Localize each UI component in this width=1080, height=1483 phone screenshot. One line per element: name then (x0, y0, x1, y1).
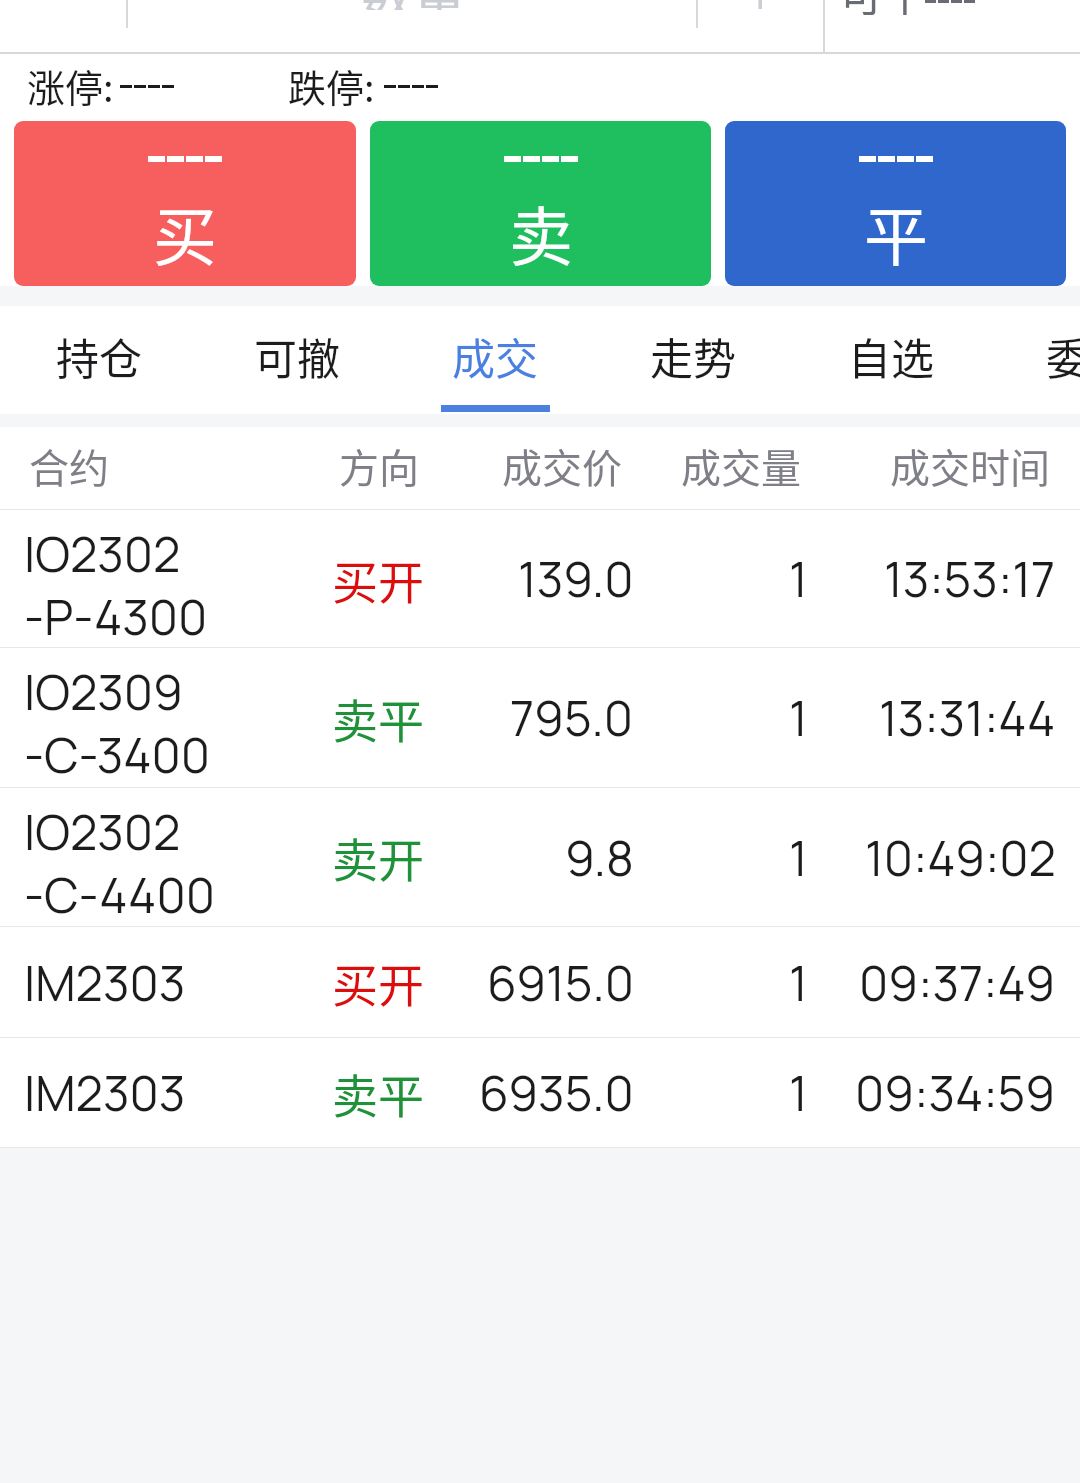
staticText: 成交价 (502, 437, 622, 495)
staticText: 卖开 (332, 824, 424, 891)
staticText: 1 (789, 950, 808, 1016)
button[interactable]: IO2302 -P-4300 (0, 510, 1080, 648)
staticText: 成交时间 (890, 437, 1050, 495)
staticText: 1 (789, 825, 808, 891)
staticText: 卖平 (332, 1060, 424, 1127)
staticText: 委托 (1046, 325, 1080, 387)
staticText: 卖平 (332, 685, 424, 752)
button[interactable]: IO2309 -C-3400 (0, 648, 1080, 788)
staticText: 可平 (839, 0, 927, 15)
staticText: 成交量 (681, 437, 801, 495)
staticText: 1 (750, 0, 768, 16)
staticText: IO2302 -P-4300 (24, 521, 208, 650)
staticText: IO2302 -C-4400 (24, 799, 215, 928)
staticText: 跌停: (288, 58, 375, 113)
staticText: 涨停: (27, 58, 114, 113)
staticText: 方向 (339, 437, 419, 495)
staticText: 795.0 (510, 685, 634, 751)
staticText: 10:49:02 (865, 825, 1056, 891)
staticText: 09:34:59 (855, 1060, 1056, 1126)
staticText: 09:37:49 (859, 950, 1056, 1016)
staticText: 走势 (650, 325, 736, 387)
staticText: 买开 (332, 949, 424, 1016)
button[interactable]: 持仓 (0, 306, 198, 413)
staticText: 成交 (452, 325, 538, 387)
staticText: 9.8 (565, 825, 634, 891)
staticText: 139.0 (518, 546, 634, 612)
staticText: 1 (789, 685, 808, 751)
staticText: 数量 (360, 0, 466, 10)
staticText: IM2303 (24, 1060, 186, 1126)
button[interactable]: 平 (725, 121, 1066, 286)
button[interactable]: IM2303 (0, 927, 1080, 1038)
staticText: 可撤 (254, 325, 340, 387)
staticText: 6935.0 (479, 1060, 634, 1126)
staticText: 13:53:17 (884, 546, 1056, 612)
button[interactable]: 卖 (370, 121, 711, 286)
staticText: IO2309 -C-3400 (24, 659, 211, 788)
staticText: 1 (789, 1060, 808, 1126)
staticText: 持仓 (56, 325, 142, 387)
button[interactable]: IO2302 -C-4400 (0, 788, 1080, 927)
staticText: 6915.0 (487, 950, 634, 1016)
staticText: 卖 (509, 186, 573, 279)
staticText: 1 (789, 546, 808, 612)
staticText: 13:31:44 (879, 685, 1056, 751)
button[interactable]: 委托 (990, 306, 1080, 413)
button[interactable]: 自选 (792, 306, 990, 413)
button[interactable]: 买 (14, 121, 356, 286)
button[interactable]: 成交 (396, 306, 594, 413)
staticText: 买 (153, 186, 217, 279)
button[interactable]: 可撤 (198, 306, 396, 413)
button[interactable]: IM2303 (0, 1038, 1080, 1148)
staticText: 平 (864, 186, 928, 279)
staticText: 自选 (848, 325, 934, 387)
staticText: 买开 (332, 546, 424, 613)
staticText: 合约 (29, 437, 109, 495)
staticText: IM2303 (24, 950, 186, 1016)
button[interactable]: 走势 (594, 306, 792, 413)
